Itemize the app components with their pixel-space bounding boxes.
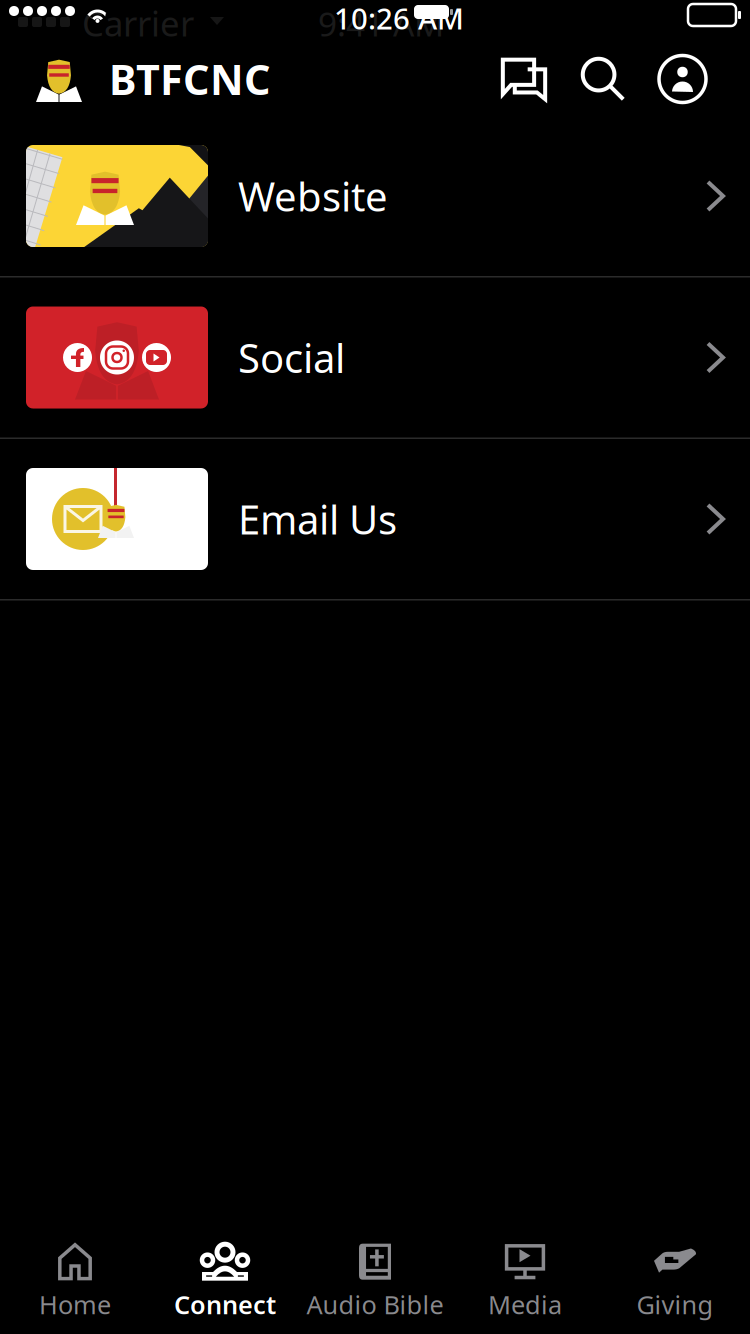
button[interactable]: Messages — [493, 50, 555, 108]
staticText: 9:41 AM — [318, 1, 444, 46]
staticText: Media — [488, 1288, 562, 1321]
button[interactable]: Media — [450, 1230, 600, 1334]
button[interactable]: Search — [573, 49, 633, 109]
button[interactable]: Connect — [150, 1230, 300, 1334]
button[interactable]: Home — [0, 1230, 150, 1334]
staticText: BTFCNC — [109, 52, 271, 106]
button[interactable]: Audio Bible — [300, 1230, 450, 1334]
button[interactable]: Email Us — [0, 439, 750, 599]
button[interactable]: Giving — [600, 1230, 750, 1334]
button[interactable]: Website — [0, 116, 750, 276]
staticText: Email Us — [238, 492, 397, 545]
staticText: Audio Bible — [306, 1288, 443, 1321]
staticText: Social — [238, 331, 345, 384]
staticText: Giving — [636, 1288, 713, 1321]
staticText: Connect — [174, 1288, 276, 1321]
staticText: Website — [238, 169, 388, 222]
button[interactable]: Account — [651, 47, 714, 110]
staticText: Carrier — [82, 0, 194, 46]
button[interactable]: Social — [0, 277, 750, 437]
staticText: Home — [39, 1288, 111, 1321]
staticText: 10:26 AM — [334, 0, 464, 37]
